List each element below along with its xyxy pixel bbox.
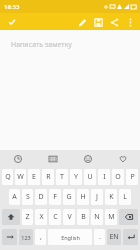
button[interactable]: B: [77, 209, 89, 225]
button[interactable]: M: [105, 209, 117, 225]
staticText: N: [94, 212, 100, 222]
staticText: M: [108, 212, 115, 222]
button[interactable]: Save: [90, 14, 106, 30]
staticText: D: [38, 192, 44, 202]
staticText: O: [115, 172, 121, 182]
staticText: R: [46, 172, 51, 182]
button[interactable]: Z: [22, 209, 33, 225]
button[interactable]: P: [126, 169, 138, 185]
staticText: F: [53, 192, 57, 202]
staticText: Z: [25, 212, 30, 222]
button[interactable]: R: [42, 169, 54, 185]
staticText: L: [123, 192, 127, 202]
staticText: P: [130, 172, 135, 182]
button[interactable]: Q: [2, 169, 13, 185]
button[interactable]: Done: [5, 15, 19, 29]
staticText: Написать заметку: [11, 40, 72, 50]
staticText: X: [39, 212, 44, 222]
staticText: .: [99, 232, 101, 242]
button[interactable]: X: [35, 209, 47, 225]
button[interactable]: 123: [19, 229, 33, 245]
button[interactable]: J: [91, 189, 103, 205]
button[interactable]: L: [119, 189, 131, 205]
button[interactable]: Emoji: [70, 150, 105, 167]
staticText: W: [17, 172, 24, 182]
button[interactable]: H: [77, 189, 89, 205]
button[interactable]: .: [94, 229, 105, 245]
button[interactable]: O: [112, 169, 124, 185]
button[interactable]: W: [15, 169, 26, 185]
button[interactable]: Recent: [0, 150, 35, 167]
staticText: EN: [109, 232, 119, 242]
button[interactable]: English: [48, 229, 92, 245]
button[interactable]: K: [105, 189, 117, 205]
button[interactable]: V: [63, 209, 75, 225]
button[interactable]: More options: [122, 14, 138, 30]
staticText: Q: [5, 172, 11, 182]
staticText: G: [66, 192, 72, 202]
staticText: English: [61, 234, 80, 241]
button[interactable]: Backspace: [119, 209, 138, 225]
staticText: I: [103, 172, 106, 182]
staticText: H: [80, 192, 86, 202]
button[interactable]: I: [98, 169, 110, 185]
button[interactable]: N: [91, 209, 103, 225]
button[interactable]: T: [56, 169, 68, 185]
button[interactable]: G: [63, 189, 75, 205]
button[interactable]: A: [9, 189, 20, 205]
staticText: C: [53, 212, 58, 222]
button[interactable]: Y: [70, 169, 82, 185]
staticText: A: [12, 192, 17, 202]
button[interactable]: E: [28, 169, 40, 185]
button[interactable]: Edit: [74, 14, 90, 30]
button[interactable]: ,: [35, 229, 46, 245]
staticText: 18:53: [4, 3, 20, 11]
staticText: ,: [40, 232, 42, 242]
staticText: Y: [74, 172, 78, 182]
staticText: T: [60, 172, 64, 182]
button[interactable]: Settings: [2, 229, 17, 245]
staticText: K: [109, 192, 114, 202]
staticText: U: [87, 172, 93, 182]
staticText: V: [67, 212, 72, 222]
button[interactable]: F: [49, 189, 61, 205]
button[interactable]: Share: [106, 14, 122, 30]
button[interactable]: C: [49, 209, 61, 225]
button[interactable]: U: [84, 169, 96, 185]
button[interactable]: Theme: [105, 150, 140, 167]
button[interactable]: Calculator: [35, 150, 70, 167]
staticText: J: [96, 192, 98, 202]
staticText: 123: [21, 234, 31, 241]
button[interactable]: Shift: [2, 209, 20, 225]
staticText: E: [32, 172, 36, 182]
button[interactable]: Enter: [123, 229, 138, 245]
staticText: B: [81, 212, 86, 222]
button[interactable]: D: [35, 189, 47, 205]
button[interactable]: EN: [107, 229, 121, 245]
button[interactable]: S: [22, 189, 33, 205]
staticText: S: [26, 192, 30, 202]
